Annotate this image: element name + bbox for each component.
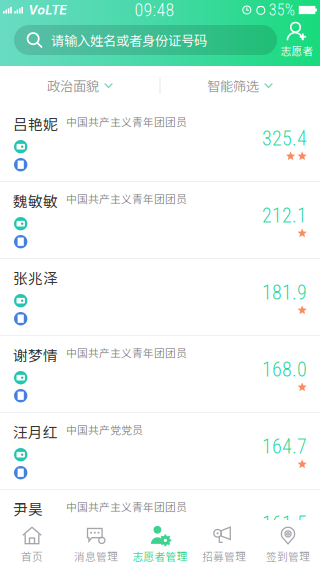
staticText: 首页 — [21, 548, 43, 564]
button[interactable]: 张兆泽 — [0, 259, 320, 336]
staticText: 汪月红 — [13, 421, 58, 442]
button[interactable]: 谢梦情 — [0, 336, 320, 413]
staticText: 中国共产主义青年团团员 — [66, 114, 187, 129]
staticText: 志愿者管理 — [132, 548, 187, 564]
button[interactable]: 汪月红 — [0, 413, 320, 490]
staticText: 212.1 — [262, 204, 307, 227]
staticText: 请输入姓名或者身份证号码 — [51, 30, 207, 50]
staticText: 35% — [269, 1, 295, 19]
staticText: 中国共产主义青年团团员 — [66, 191, 187, 206]
button[interactable]: 智能筛选 — [160, 66, 320, 105]
staticText: 智能筛选 — [207, 76, 259, 95]
button[interactable]: 签到管理 — [256, 520, 320, 569]
button[interactable]: 招募管理 — [192, 520, 256, 569]
button[interactable]: 吕艳妮 — [0, 105, 320, 182]
staticText: 消息管理 — [74, 548, 118, 564]
button[interactable]: 志愿者管理 — [128, 520, 192, 569]
button[interactable]: 请输入姓名或者身份证号码 — [14, 25, 277, 55]
staticText: 吕艳妮 — [13, 113, 58, 134]
button[interactable]: 尹昊 — [0, 490, 320, 567]
staticText: 中国共产主义青年团团员 — [66, 345, 187, 360]
button[interactable]: 消息管理 — [64, 520, 128, 569]
staticText: 谢梦情 — [13, 344, 58, 365]
staticText: 张兆泽 — [13, 267, 58, 288]
staticText: 志愿者 — [280, 43, 313, 58]
button[interactable]: 首页 — [0, 520, 64, 569]
staticText: 尹昊 — [13, 498, 43, 519]
staticText: 中国共产主义青年团团员 — [66, 499, 187, 514]
button[interactable]: 魏敏敏 — [0, 182, 320, 259]
staticText: VoLTE — [28, 2, 67, 18]
staticText: 签到管理 — [266, 548, 310, 564]
staticText: 政治面貌 — [47, 76, 99, 95]
staticText: 09:48 — [134, 0, 174, 21]
button[interactable]: 政治面貌 — [0, 66, 160, 105]
staticText: 181.9 — [262, 281, 307, 304]
staticText: 魏敏敏 — [13, 190, 58, 211]
staticText: 325.4 — [262, 127, 307, 150]
button[interactable]: 志愿者 — [277, 22, 317, 58]
staticText: 中国共产党党员 — [66, 422, 143, 437]
staticText: 164.7 — [262, 435, 307, 458]
staticText: 161.5 — [262, 512, 307, 535]
staticText: 168.0 — [262, 358, 307, 381]
staticText: 招募管理 — [202, 548, 246, 564]
